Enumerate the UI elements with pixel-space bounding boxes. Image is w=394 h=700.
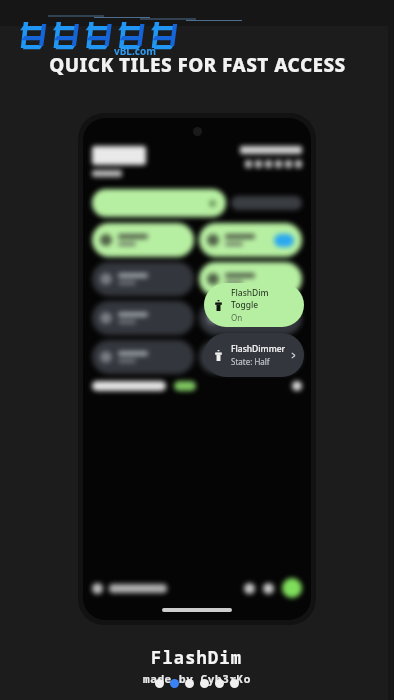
staticText: made by Cyb3rKo bbox=[143, 671, 251, 686]
button[interactable] bbox=[92, 340, 194, 374]
button[interactable] bbox=[170, 679, 179, 688]
staticText: FlashDim Toggle bbox=[231, 287, 297, 311]
other: Flashlight bbox=[213, 350, 224, 361]
staticText: vBL.com bbox=[114, 44, 156, 58]
button[interactable] bbox=[92, 301, 194, 335]
staticText: FlashDimmer bbox=[231, 343, 286, 355]
button[interactable]: Flashlight bbox=[204, 283, 304, 327]
button[interactable] bbox=[199, 262, 302, 296]
staticText: FlashDim bbox=[151, 646, 243, 669]
button[interactable] bbox=[92, 262, 194, 296]
button[interactable]: Flashlight bbox=[204, 333, 304, 377]
staticText: On bbox=[231, 312, 243, 323]
button[interactable] bbox=[199, 223, 302, 257]
button[interactable] bbox=[199, 301, 302, 335]
button[interactable] bbox=[155, 679, 164, 688]
button[interactable] bbox=[230, 679, 239, 688]
button[interactable] bbox=[185, 679, 194, 688]
staticText: State: Half bbox=[231, 356, 270, 367]
button[interactable] bbox=[199, 340, 302, 374]
other: Flashlight bbox=[213, 300, 224, 311]
button[interactable] bbox=[200, 679, 209, 688]
staticText: QUICK TILES FOR FAST ACCESS bbox=[49, 52, 346, 78]
button[interactable] bbox=[215, 679, 224, 688]
button[interactable] bbox=[92, 223, 194, 257]
